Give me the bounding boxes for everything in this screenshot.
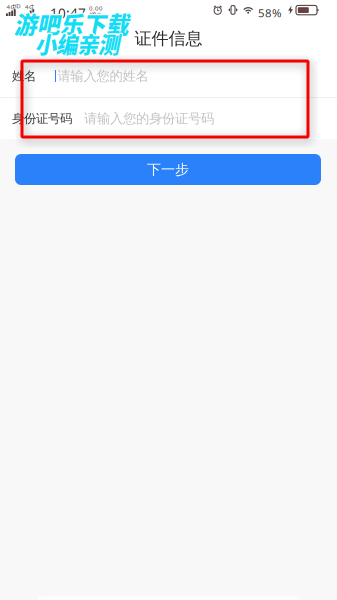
staticText: 小编亲测 bbox=[36, 29, 120, 60]
staticText: 游吧乐下载 bbox=[14, 7, 129, 40]
staticText: 游吧乐下载 bbox=[13, 7, 128, 40]
staticText: 小编亲测 bbox=[34, 28, 118, 59]
staticText: 小编亲测 bbox=[35, 27, 119, 57]
staticText: 小编亲测 bbox=[35, 29, 119, 60]
staticText: 游吧乐下载 bbox=[14, 8, 129, 41]
staticText: 游吧乐下载 bbox=[13, 8, 128, 41]
staticText: 证件信息 bbox=[134, 28, 202, 49]
staticText: 请输入您的身份证号码 bbox=[84, 110, 214, 127]
staticText: 请输入您的姓名 bbox=[57, 68, 148, 84]
staticText: 游吧乐下载 bbox=[15, 8, 130, 41]
button[interactable]: 身份证号码 bbox=[0, 98, 337, 139]
staticText: 小编亲测 bbox=[35, 28, 119, 59]
staticText: 游吧乐下载 bbox=[15, 6, 130, 39]
staticText: HD bbox=[12, 2, 20, 10]
button[interactable]: 下一步 bbox=[15, 154, 321, 185]
staticText: 游吧乐下载 bbox=[15, 7, 130, 40]
staticText: + bbox=[31, 2, 34, 10]
staticText: 小编亲测 bbox=[36, 27, 120, 58]
staticText: 小编亲测 bbox=[34, 27, 118, 58]
staticText: 游吧乐下载 bbox=[14, 6, 129, 38]
staticText: 姓名 bbox=[12, 68, 36, 84]
staticText: 游吧乐下载 bbox=[13, 6, 128, 39]
staticText: 10:47 bbox=[50, 4, 86, 22]
staticText: 4G bbox=[25, 3, 33, 11]
staticText: 4G bbox=[6, 3, 14, 11]
button[interactable]: 姓名 bbox=[0, 55, 337, 97]
staticText: 小编亲测 bbox=[36, 28, 120, 59]
staticText: 0.00 bbox=[89, 4, 103, 12]
staticText: 58% bbox=[258, 5, 282, 21]
button[interactable]: 返回 bbox=[32, 22, 66, 55]
staticText: 身份证号码 bbox=[12, 111, 72, 126]
staticText: 下一步 bbox=[147, 161, 189, 178]
staticText: 小编亲测 bbox=[34, 29, 118, 60]
staticText: KB/s bbox=[89, 10, 101, 18]
